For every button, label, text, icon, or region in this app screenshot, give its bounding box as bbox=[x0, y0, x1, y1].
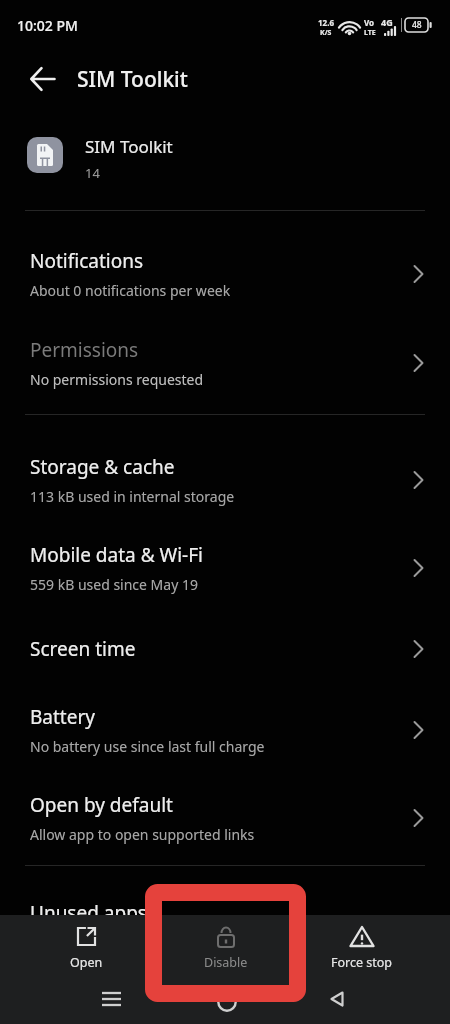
staticText: Unused apps bbox=[30, 900, 147, 926]
button[interactable] bbox=[314, 982, 360, 1016]
staticText: Permissions bbox=[30, 337, 139, 363]
staticText: 48 bbox=[412, 19, 422, 31]
staticText: SIM Toolkit bbox=[77, 65, 188, 94]
button[interactable] bbox=[20, 60, 64, 98]
staticText: SIM Toolkit bbox=[85, 135, 173, 158]
staticText: Battery bbox=[30, 704, 95, 730]
staticText: No permissions requested bbox=[30, 370, 204, 389]
staticText: 10:02 PM bbox=[17, 16, 78, 35]
staticText: Screen time bbox=[30, 636, 136, 662]
button[interactable]: Battery bbox=[0, 689, 450, 771]
button[interactable]: Storage & cache bbox=[0, 439, 450, 521]
staticText: About 0 notifications per week bbox=[30, 281, 231, 300]
button[interactable]: Notifications bbox=[0, 233, 450, 315]
button[interactable]: Mobile data & Wi-Fi bbox=[0, 527, 450, 609]
button[interactable] bbox=[204, 985, 250, 1019]
staticText: Vo bbox=[364, 17, 375, 28]
staticText: Storage & cache bbox=[30, 454, 175, 480]
staticText: 4G bbox=[381, 16, 393, 28]
staticText: 113 kB used in internal storage bbox=[30, 487, 235, 506]
staticText: 14 bbox=[85, 164, 100, 182]
button[interactable]: Open by default bbox=[0, 777, 450, 859]
button[interactable] bbox=[88, 982, 134, 1016]
button[interactable]: Screen time bbox=[0, 623, 450, 675]
staticText: 559 kB used since May 19 bbox=[30, 575, 198, 594]
staticText: Allow app to open supported links bbox=[30, 825, 255, 844]
staticText: K/S bbox=[320, 28, 332, 38]
button[interactable]: Open bbox=[16, 915, 156, 981]
button[interactable]: Force stop bbox=[292, 915, 432, 981]
staticText: No battery use since last full charge bbox=[30, 737, 265, 756]
staticText: Notifications bbox=[30, 248, 144, 274]
staticText: 12.6 bbox=[318, 17, 334, 28]
button[interactable]: Permissions bbox=[0, 322, 450, 404]
staticText: Disable bbox=[204, 954, 248, 971]
staticText: Open bbox=[70, 954, 103, 971]
staticText: Force stop bbox=[331, 954, 393, 971]
button[interactable]: Disable bbox=[156, 915, 296, 981]
staticText: Open by default bbox=[30, 792, 173, 818]
staticText: Mobile data & Wi-Fi bbox=[30, 542, 203, 568]
staticText: LTE bbox=[364, 28, 376, 38]
